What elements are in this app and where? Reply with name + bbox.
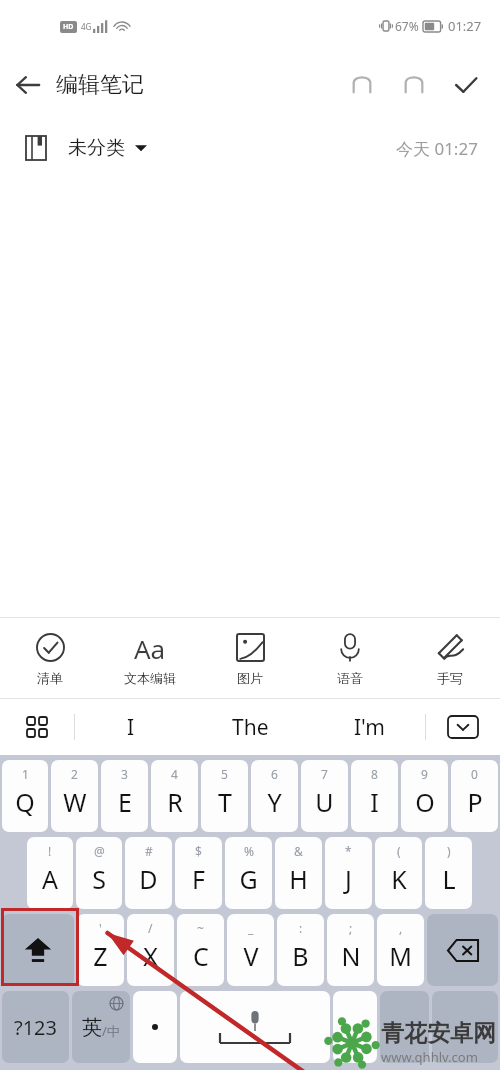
button[interactable]: Period <box>133 991 177 1063</box>
staticText: _ <box>248 920 254 936</box>
button[interactable]: 8 <box>351 760 398 832</box>
button[interactable]: / <box>127 914 174 986</box>
staticText: T <box>218 785 232 819</box>
staticText: 青花安卓网 <box>381 1019 496 1048</box>
staticText: L <box>442 862 456 896</box>
button[interactable]: Shift <box>2 914 74 986</box>
button[interactable]: 1 <box>2 760 48 832</box>
staticText: J <box>345 862 352 896</box>
staticText: Q <box>15 785 35 819</box>
button[interactable]: : <box>277 914 324 986</box>
button[interactable]: * <box>325 837 372 909</box>
button[interactable]: ( <box>375 837 422 909</box>
staticText: U <box>315 785 334 819</box>
button[interactable]: Hide keyboard <box>426 699 500 755</box>
button[interactable] <box>333 991 377 1063</box>
button[interactable] <box>380 991 429 1063</box>
staticText: G <box>239 862 258 896</box>
staticText: C <box>193 939 209 973</box>
button[interactable]: I'm <box>314 699 425 755</box>
staticText: H <box>289 862 308 896</box>
staticText: * <box>345 843 352 859</box>
staticText: B <box>292 939 309 973</box>
button[interactable]: Back <box>0 57 56 113</box>
staticText: M <box>389 939 412 973</box>
staticText: ( <box>397 843 401 859</box>
button[interactable]: The <box>186 699 314 755</box>
staticText: 0 <box>471 766 478 782</box>
staticText: ! <box>48 843 52 859</box>
button[interactable]: 语音 <box>300 618 400 698</box>
button[interactable]: % <box>225 837 272 909</box>
staticText: R <box>167 785 183 819</box>
staticText: 图片 <box>237 670 263 686</box>
staticText: 清单 <box>37 670 63 686</box>
button[interactable]: Save <box>440 59 492 111</box>
staticText: X <box>143 939 158 973</box>
button[interactable]: ! <box>27 837 73 909</box>
button[interactable]: _ <box>227 914 274 986</box>
button[interactable]: & <box>275 837 322 909</box>
staticText: I <box>370 785 379 819</box>
button[interactable]: 2 <box>51 760 98 832</box>
button[interactable]: Keyboard menu <box>0 699 74 755</box>
button[interactable]: 6 <box>251 760 298 832</box>
staticText: , <box>399 920 403 936</box>
button[interactable]: Delete <box>427 914 498 986</box>
button[interactable]: # <box>125 837 172 909</box>
button[interactable]: 未分类 <box>26 136 147 160</box>
button[interactable]: 图片 <box>200 618 300 698</box>
button[interactable]: ; <box>327 914 374 986</box>
staticText: I <box>127 713 135 742</box>
button[interactable]: ~ <box>177 914 224 986</box>
button[interactable]: 3 <box>101 760 148 832</box>
button[interactable]: $ <box>175 837 222 909</box>
staticText: 英 <box>82 1015 102 1040</box>
button[interactable]: 5 <box>201 760 248 832</box>
button[interactable]: ) <box>425 837 472 909</box>
button[interactable]: ?123 <box>2 991 69 1063</box>
staticText: Y <box>267 785 282 819</box>
staticText: ' <box>99 920 102 936</box>
staticText: V <box>243 939 259 973</box>
staticText: % <box>244 843 254 859</box>
button[interactable]: , <box>377 914 424 986</box>
button[interactable]: Undo <box>336 59 388 111</box>
button[interactable]: 0 <box>451 760 498 832</box>
staticText: ?123 <box>14 1014 57 1041</box>
button[interactable]: ' <box>77 914 124 986</box>
button[interactable]: Space <box>180 991 330 1063</box>
staticText: 手写 <box>437 670 463 686</box>
button[interactable]: Redo <box>388 59 440 111</box>
button[interactable]: 9 <box>401 760 448 832</box>
staticText: 3 <box>121 766 128 782</box>
button[interactable]: I <box>75 699 186 755</box>
staticText: W <box>63 785 87 819</box>
staticText: A <box>42 862 58 896</box>
staticText: 7 <box>321 766 328 782</box>
button[interactable]: 7 <box>301 760 348 832</box>
staticText: K <box>391 862 407 896</box>
button[interactable]: 手写 <box>400 618 500 698</box>
staticText: ) <box>447 843 451 859</box>
staticText: 文本编辑 <box>124 670 176 686</box>
button[interactable]: 清单 <box>0 618 100 698</box>
button[interactable]: Aa <box>100 618 200 698</box>
staticText: O <box>415 785 435 819</box>
staticText: 4 <box>171 766 178 782</box>
staticText: : <box>299 920 303 936</box>
staticText: D <box>139 862 158 896</box>
staticText: 语音 <box>337 670 363 686</box>
staticText: # <box>145 843 153 859</box>
button[interactable]: 4 <box>151 760 198 832</box>
staticText: 2 <box>71 766 78 782</box>
staticText: 01:27 <box>448 17 482 35</box>
staticText: E <box>118 785 132 819</box>
staticText: F <box>192 862 205 896</box>
staticText: P <box>467 785 483 819</box>
staticText: S <box>92 862 106 896</box>
button[interactable]: 英 <box>72 991 130 1063</box>
button[interactable] <box>432 991 498 1063</box>
staticText: Aa <box>134 631 166 663</box>
button[interactable]: @ <box>76 837 122 909</box>
